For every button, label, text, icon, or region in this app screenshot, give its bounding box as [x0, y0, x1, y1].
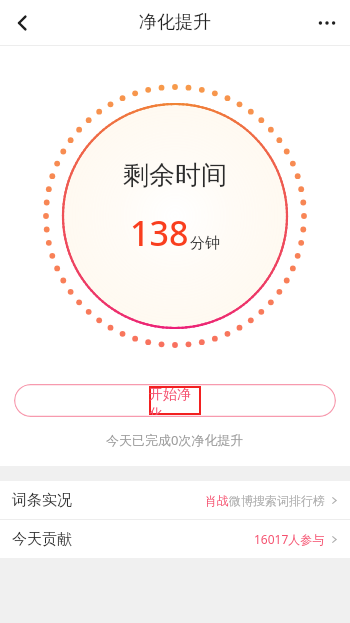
staticText: 净化提升: [139, 11, 211, 34]
button[interactable]: Back: [0, 0, 46, 45]
button[interactable]: 开始净化: [14, 384, 336, 417]
staticText: 肖战微博搜索词排行榜: [205, 493, 325, 508]
staticText: 138: [130, 210, 189, 256]
button[interactable]: More options: [304, 0, 350, 45]
staticText: 16017人参与: [254, 531, 325, 547]
button[interactable]: 今天贡献: [0, 520, 350, 558]
staticText: 今天贡献: [12, 530, 72, 549]
staticText: 开始净化: [149, 386, 201, 415]
staticText: 分钟: [190, 234, 220, 253]
staticText: 剩余时间: [123, 159, 227, 192]
staticText: 今天已完成0次净化提升: [106, 431, 244, 449]
staticText: 词条实况: [12, 491, 72, 510]
button[interactable]: 词条实况: [0, 481, 350, 519]
